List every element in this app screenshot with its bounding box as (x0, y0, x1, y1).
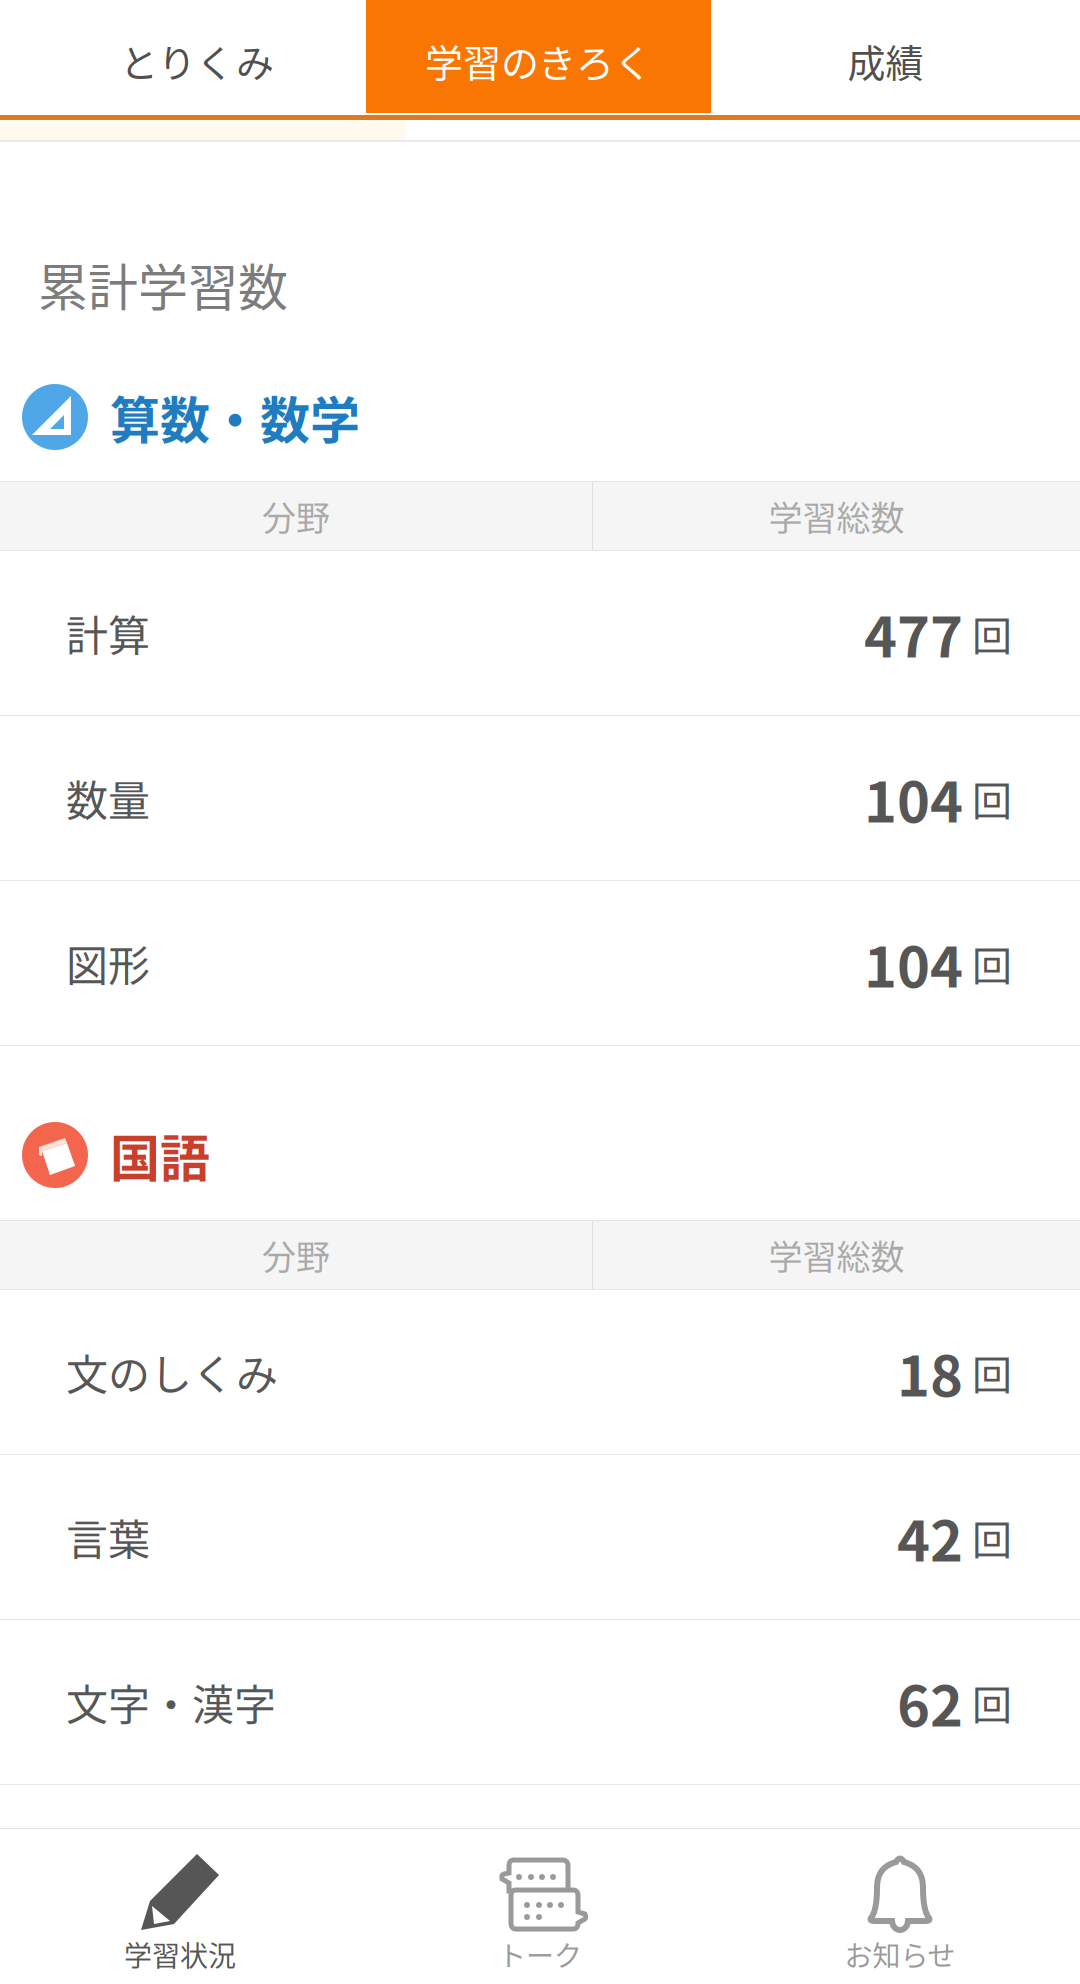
staticText: 回 (963, 604, 1012, 662)
staticText: 回 (963, 1508, 1012, 1566)
staticText: 分野 (262, 1230, 330, 1280)
staticText: 数量 (66, 768, 150, 828)
button[interactable]: トーク (360, 1829, 720, 1984)
button[interactable]: 学習のきろく (366, 0, 711, 113)
staticText: 回 (963, 1343, 1012, 1401)
staticText: 回 (963, 1673, 1012, 1731)
staticText: 文字・漢字 (66, 1672, 276, 1732)
staticText: 言葉 (66, 1507, 150, 1567)
staticText: 学習状況 (124, 1934, 236, 1974)
staticText: 計算 (66, 603, 150, 663)
staticText: 国語 (110, 1119, 210, 1191)
staticText: 18 (897, 1331, 963, 1413)
staticText: 104 (864, 922, 963, 1004)
staticText: 分野 (262, 491, 330, 541)
staticText: 学習総数 (768, 1230, 904, 1280)
staticText: 104 (864, 757, 963, 839)
staticText: 回 (963, 769, 1012, 827)
staticText: 図形 (66, 933, 150, 993)
staticText: 学習総数 (768, 491, 904, 541)
button[interactable]: 成績 (711, 0, 1080, 113)
staticText: 62 (897, 1661, 963, 1743)
staticText: 回 (963, 934, 1012, 992)
button[interactable]: とりくみ (0, 0, 366, 113)
staticText: 累計学習数 (38, 248, 288, 320)
button[interactable]: お知らせ (720, 1829, 1080, 1984)
staticText: 算数・数学 (110, 381, 360, 453)
staticText: 文のしくみ (66, 1342, 278, 1402)
staticText: 42 (897, 1496, 963, 1578)
staticText: 成績 (847, 33, 923, 88)
staticText: 477 (864, 592, 963, 674)
button[interactable]: 学習状況 (0, 1829, 360, 1984)
staticText: お知らせ (844, 1934, 955, 1974)
staticText: とりくみ (120, 33, 274, 88)
staticText: トーク (498, 1934, 582, 1974)
staticText: 学習のきろく (425, 33, 652, 88)
